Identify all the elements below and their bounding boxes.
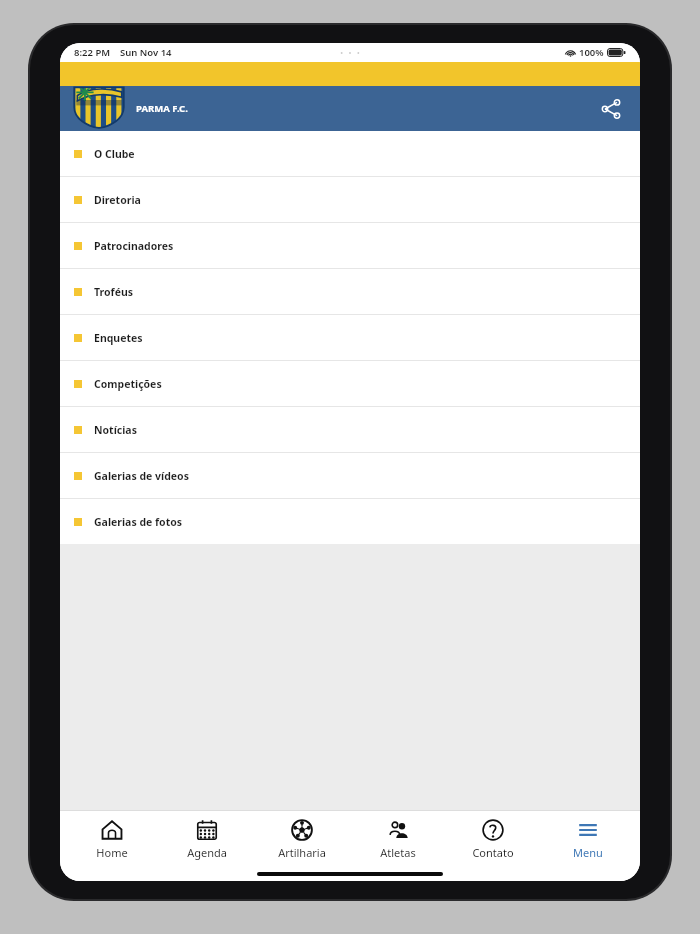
staticText: Artilharia [278,845,326,860]
staticText: Menu [573,845,603,860]
staticText: Agenda [187,845,227,860]
button[interactable]: Agenda [164,815,250,864]
staticText: Galerias de fotos [94,515,183,529]
button[interactable]: O Clube [60,131,640,176]
staticText: Galerias de vídeos [94,469,189,483]
button[interactable]: Patrocinadores [60,223,640,268]
staticText: 8:22 PM [74,46,111,59]
staticText: Diretoria [94,193,141,207]
staticText: PARMA F.C. [136,102,188,115]
staticText: Atletas [380,845,416,860]
button[interactable]: Diretoria [60,177,640,222]
staticText: Notícias [94,423,137,437]
staticText: O Clube [94,147,135,161]
button[interactable]: Troféus [60,269,640,314]
button[interactable]: Share [592,90,630,128]
button[interactable]: Galerias de vídeos [60,453,640,498]
staticText: Enquetes [94,331,143,345]
button[interactable]: Artilharia [259,815,345,864]
button[interactable]: Competições [60,361,640,406]
staticText: Home [96,845,128,860]
staticText: 100% [579,46,604,59]
staticText: Patrocinadores [94,239,174,253]
button[interactable]: Enquetes [60,315,640,360]
staticText: Contato [472,845,514,860]
button[interactable]: Home [69,815,155,864]
button[interactable]: Notícias [60,407,640,452]
button[interactable]: Galerias de fotos [60,499,640,544]
staticText: Sun Nov 14 [120,46,172,59]
staticText: Troféus [94,285,134,299]
button[interactable]: Menu [545,815,631,864]
button[interactable]: Atletas [355,815,441,864]
button[interactable]: Contato [450,815,536,864]
staticText: Competições [94,377,162,391]
